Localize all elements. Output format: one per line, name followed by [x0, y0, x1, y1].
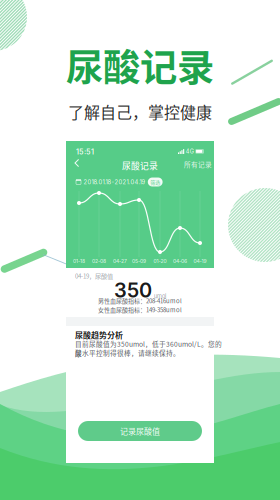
- staticText: 筛选: [150, 178, 160, 186]
- staticText: umol: [154, 293, 166, 300]
- staticText: 记录尿酸值: [120, 425, 160, 437]
- staticText: 酸水平控制得很棒，请继续保持。: [75, 348, 180, 358]
- staticText: 15:51: [76, 147, 94, 156]
- staticText: 04-27: [113, 258, 127, 264]
- staticText: 04-19: [193, 258, 206, 264]
- button[interactable]: 记录尿酸值: [78, 421, 202, 441]
- staticText: 4G: [186, 148, 194, 155]
- staticText: 目前尿酸值为350umol，低于360umol/L。您的尿: [75, 339, 222, 358]
- staticText: 男性血尿酸指标：208-416umol: [98, 296, 182, 305]
- staticText: 01-20: [153, 258, 166, 264]
- staticText: 04-06: [173, 258, 187, 264]
- staticText: 2018.01.18-2021.04.19: [83, 178, 145, 186]
- button[interactable]: 2018.01.18-2021.04.19: [76, 176, 206, 188]
- staticText: 01-18: [73, 258, 85, 264]
- staticText: 尿酸记录: [122, 159, 158, 172]
- button[interactable]: 所有记录: [179, 155, 217, 173]
- staticText: 05-09: [132, 258, 146, 264]
- staticText: 所有记录: [184, 159, 212, 169]
- staticText: 了解自己，掌控健康: [68, 100, 212, 123]
- staticText: 女性血尿酸指标：149-358umol: [98, 305, 182, 314]
- staticText: 350: [114, 278, 152, 302]
- staticText: 04-19，尿酸值: [75, 271, 113, 280]
- button[interactable]: Back: [70, 154, 88, 172]
- staticText: 02-08: [92, 258, 106, 264]
- staticText: 尿酸记录: [66, 38, 214, 92]
- staticText: 尿酸趋势分析: [75, 329, 123, 341]
